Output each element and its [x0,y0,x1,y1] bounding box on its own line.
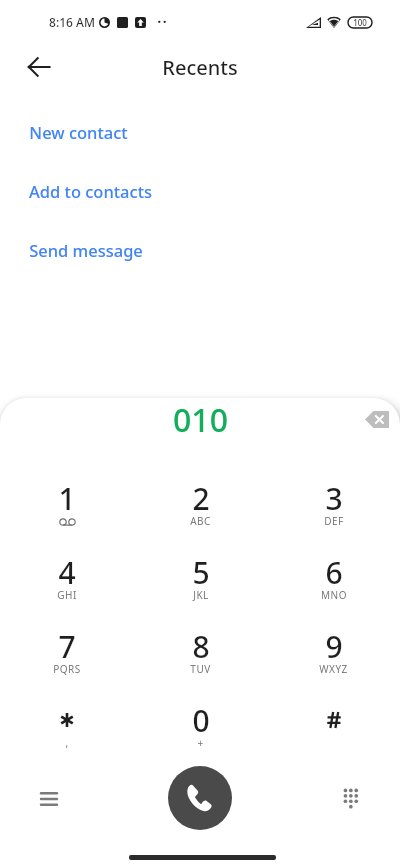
button[interactable]: 6 [267,551,400,625]
staticText: 9 [325,626,343,667]
button[interactable]: , [0,699,134,773]
staticText: 4 [58,552,76,593]
button[interactable]: Add to contacts [0,171,400,211]
button[interactable]: Call [168,766,232,830]
staticText: PQRS [53,662,81,676]
button[interactable]: Menu [26,775,72,821]
staticText: , [65,736,69,750]
staticText: 100 [353,17,367,28]
button[interactable]: 1 [0,477,134,551]
button[interactable]: Delete [355,398,399,441]
staticText: Recents [162,54,238,81]
staticText: TUV [190,662,211,676]
staticText: 8:16 AM [49,14,95,30]
button[interactable]: 2 [134,477,267,551]
staticText: 0 [192,700,210,741]
staticText: MNO [321,588,347,602]
staticText: Add to contacts [29,180,152,202]
button[interactable]: 4 [0,551,134,625]
staticText: JKL [193,588,209,602]
staticText: 8 [192,626,210,667]
staticText: New contact [29,121,128,143]
staticText: WXYZ [319,662,348,676]
staticText: 7 [58,626,76,667]
staticText: 2 [192,478,210,519]
staticText: 3 [325,478,343,519]
button[interactable]: 0 [134,699,267,773]
button[interactable]: New contact [0,112,400,152]
staticText: 5 [192,552,210,593]
button[interactable]: 3 [267,477,400,551]
staticText: DEF [324,514,344,528]
button[interactable]: 5 [134,551,267,625]
button[interactable]: Send message [0,230,400,270]
staticText: ABC [190,514,211,528]
staticText: 010 [173,398,228,442]
button[interactable]: 7 [0,625,134,699]
button[interactable]: Dialpad [328,775,374,821]
staticText: 1 [58,478,76,519]
button[interactable]: Back [18,47,60,87]
staticText: 6 [325,552,343,593]
button[interactable]: 9 [267,625,400,699]
button[interactable] [267,699,400,773]
staticText: Send message [29,239,143,261]
staticText: GHI [57,588,77,602]
button[interactable]: 8 [134,625,267,699]
staticText: + [197,736,204,750]
